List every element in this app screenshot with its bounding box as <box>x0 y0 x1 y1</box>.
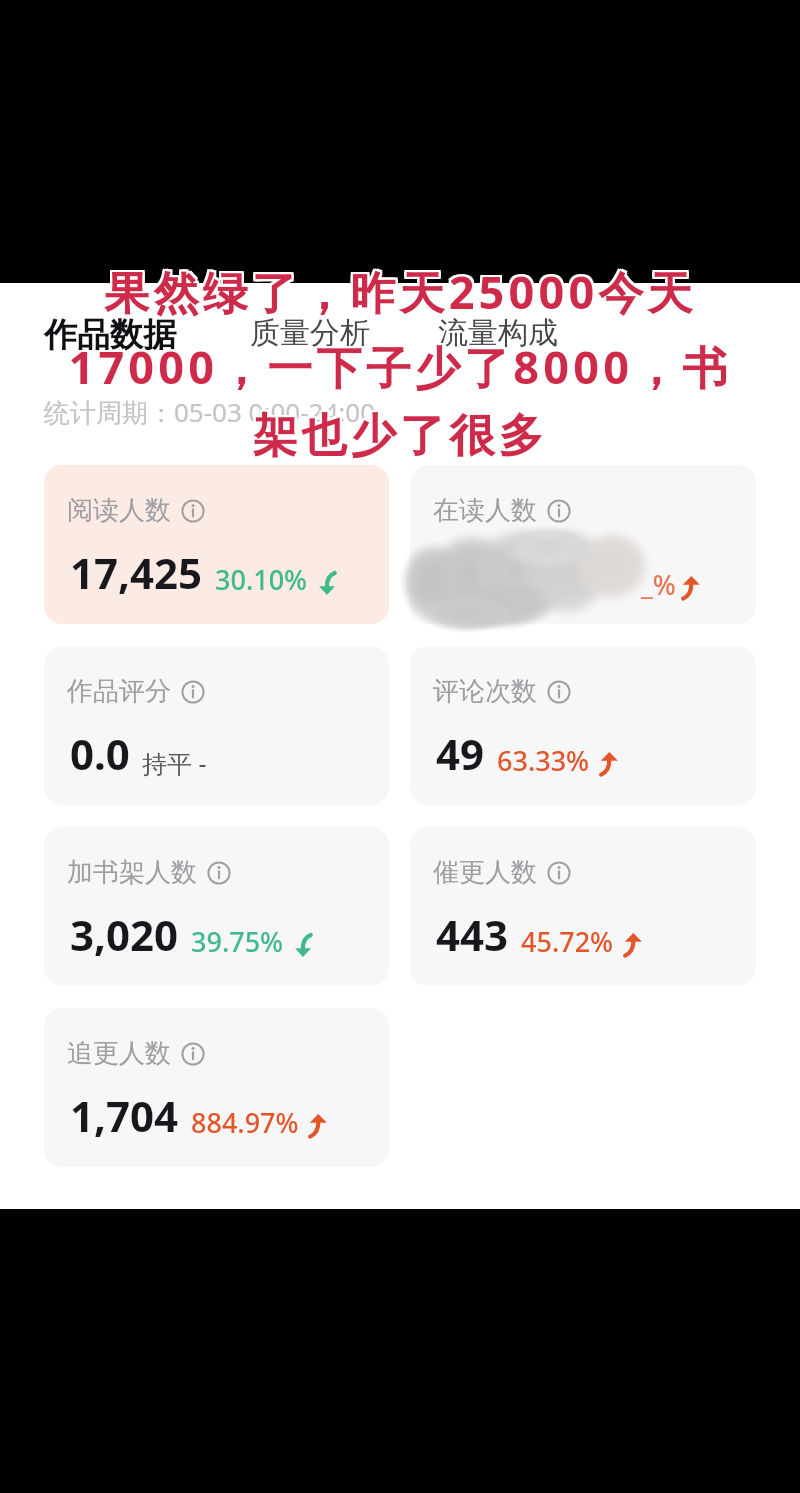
staticText: 17,425 <box>70 544 203 601</box>
button[interactable]: 关于评论次数 <box>547 680 571 704</box>
staticText: 架也少了很多 <box>254 406 550 463</box>
staticText: 17000，一下子少了8000，书 <box>68 334 732 395</box>
staticText: 0.0 <box>70 725 130 782</box>
staticText: 49 <box>436 725 485 782</box>
button[interactable]: 质量分析 <box>250 314 370 352</box>
button[interactable]: 作品评分 <box>44 646 389 805</box>
staticText: 1,704 <box>70 1087 179 1144</box>
staticText: 443 <box>436 906 509 963</box>
button[interactable]: 关于在读人数 <box>547 499 571 523</box>
staticText: 追更人数 <box>67 1037 171 1070</box>
staticText: _% <box>641 566 676 603</box>
staticText: 果然绿了，昨天25000今天 <box>106 261 699 322</box>
button[interactable]: 加书架人数 <box>44 827 389 986</box>
staticText: 17000，一下子少了8000，书 <box>68 338 732 399</box>
staticText: 3,020 <box>70 906 179 963</box>
button[interactable]: 催更人数 <box>410 827 756 986</box>
staticText: 架也少了很多 <box>252 408 548 465</box>
staticText: 果然绿了，昨天25000今天 <box>106 259 699 320</box>
staticText: 在读人数 <box>433 494 537 527</box>
staticText: 45.72% <box>521 923 614 960</box>
button[interactable]: 阅读人数 <box>44 465 389 624</box>
staticText: 17000，一下子少了8000，书 <box>70 338 734 399</box>
staticText: 架也少了很多 <box>250 410 546 467</box>
staticText: 果然绿了，昨天25000今天 <box>102 259 695 320</box>
staticText: 30.10% <box>215 561 308 598</box>
staticText: 884.97% <box>191 1104 299 1141</box>
button[interactable]: 作品数据 <box>44 314 176 356</box>
staticText: 流量构成 <box>438 314 558 352</box>
staticText: 作品数据 <box>44 314 176 356</box>
staticText: 质量分析 <box>250 314 370 352</box>
staticText: 39.75% <box>191 923 284 960</box>
button[interactable]: 评论次数 <box>410 646 756 805</box>
staticText: 架也少了很多 <box>252 406 548 463</box>
staticText: 催更人数 <box>433 856 537 889</box>
staticText: 果然绿了，昨天25000今天 <box>106 263 699 324</box>
staticText: 果然绿了，昨天25000今天 <box>104 261 697 322</box>
staticText: 统计周期：05-03 0:00-24:00 <box>44 394 376 430</box>
staticText: 架也少了很多 <box>252 410 548 467</box>
staticText: 加书架人数 <box>67 856 197 889</box>
staticText: 17000，一下子少了8000，书 <box>66 334 730 395</box>
button[interactable]: 关于阅读人数 <box>181 499 205 523</box>
button[interactable]: 关于追更人数 <box>181 1042 205 1066</box>
button[interactable]: 关于加书架人数 <box>207 861 231 885</box>
staticText: 果然绿了，昨天25000今天 <box>102 261 695 322</box>
staticText: 17000，一下子少了8000，书 <box>70 334 734 395</box>
staticText: 持平 - <box>142 746 207 780</box>
staticText: 果然绿了，昨天25000今天 <box>102 263 695 324</box>
staticText: 架也少了很多 <box>250 408 546 465</box>
staticText: 评论次数 <box>433 675 537 708</box>
staticText: 果然绿了，昨天25000今天 <box>104 259 697 320</box>
staticText: 果然绿了，昨天25000今天 <box>104 263 697 324</box>
staticText: 17000，一下子少了8000，书 <box>66 338 730 399</box>
staticText: 63.33% <box>497 742 590 779</box>
button[interactable]: 关于催更人数 <box>547 861 571 885</box>
staticText: 17000，一下子少了8000，书 <box>66 336 730 397</box>
button[interactable]: 追更人数 <box>44 1008 389 1167</box>
staticText: 作品评分 <box>67 675 171 708</box>
staticText: 阅读人数 <box>67 494 171 527</box>
button[interactable]: 流量构成 <box>438 314 558 352</box>
staticText: 17000，一下子少了8000，书 <box>68 336 732 397</box>
staticText: 架也少了很多 <box>250 406 546 463</box>
button[interactable]: 关于作品评分 <box>181 680 205 704</box>
button[interactable]: 在读人数 <box>410 465 756 624</box>
staticText: 架也少了很多 <box>254 410 550 467</box>
staticText: 17000，一下子少了8000，书 <box>70 336 734 397</box>
staticText: 架也少了很多 <box>254 408 550 465</box>
